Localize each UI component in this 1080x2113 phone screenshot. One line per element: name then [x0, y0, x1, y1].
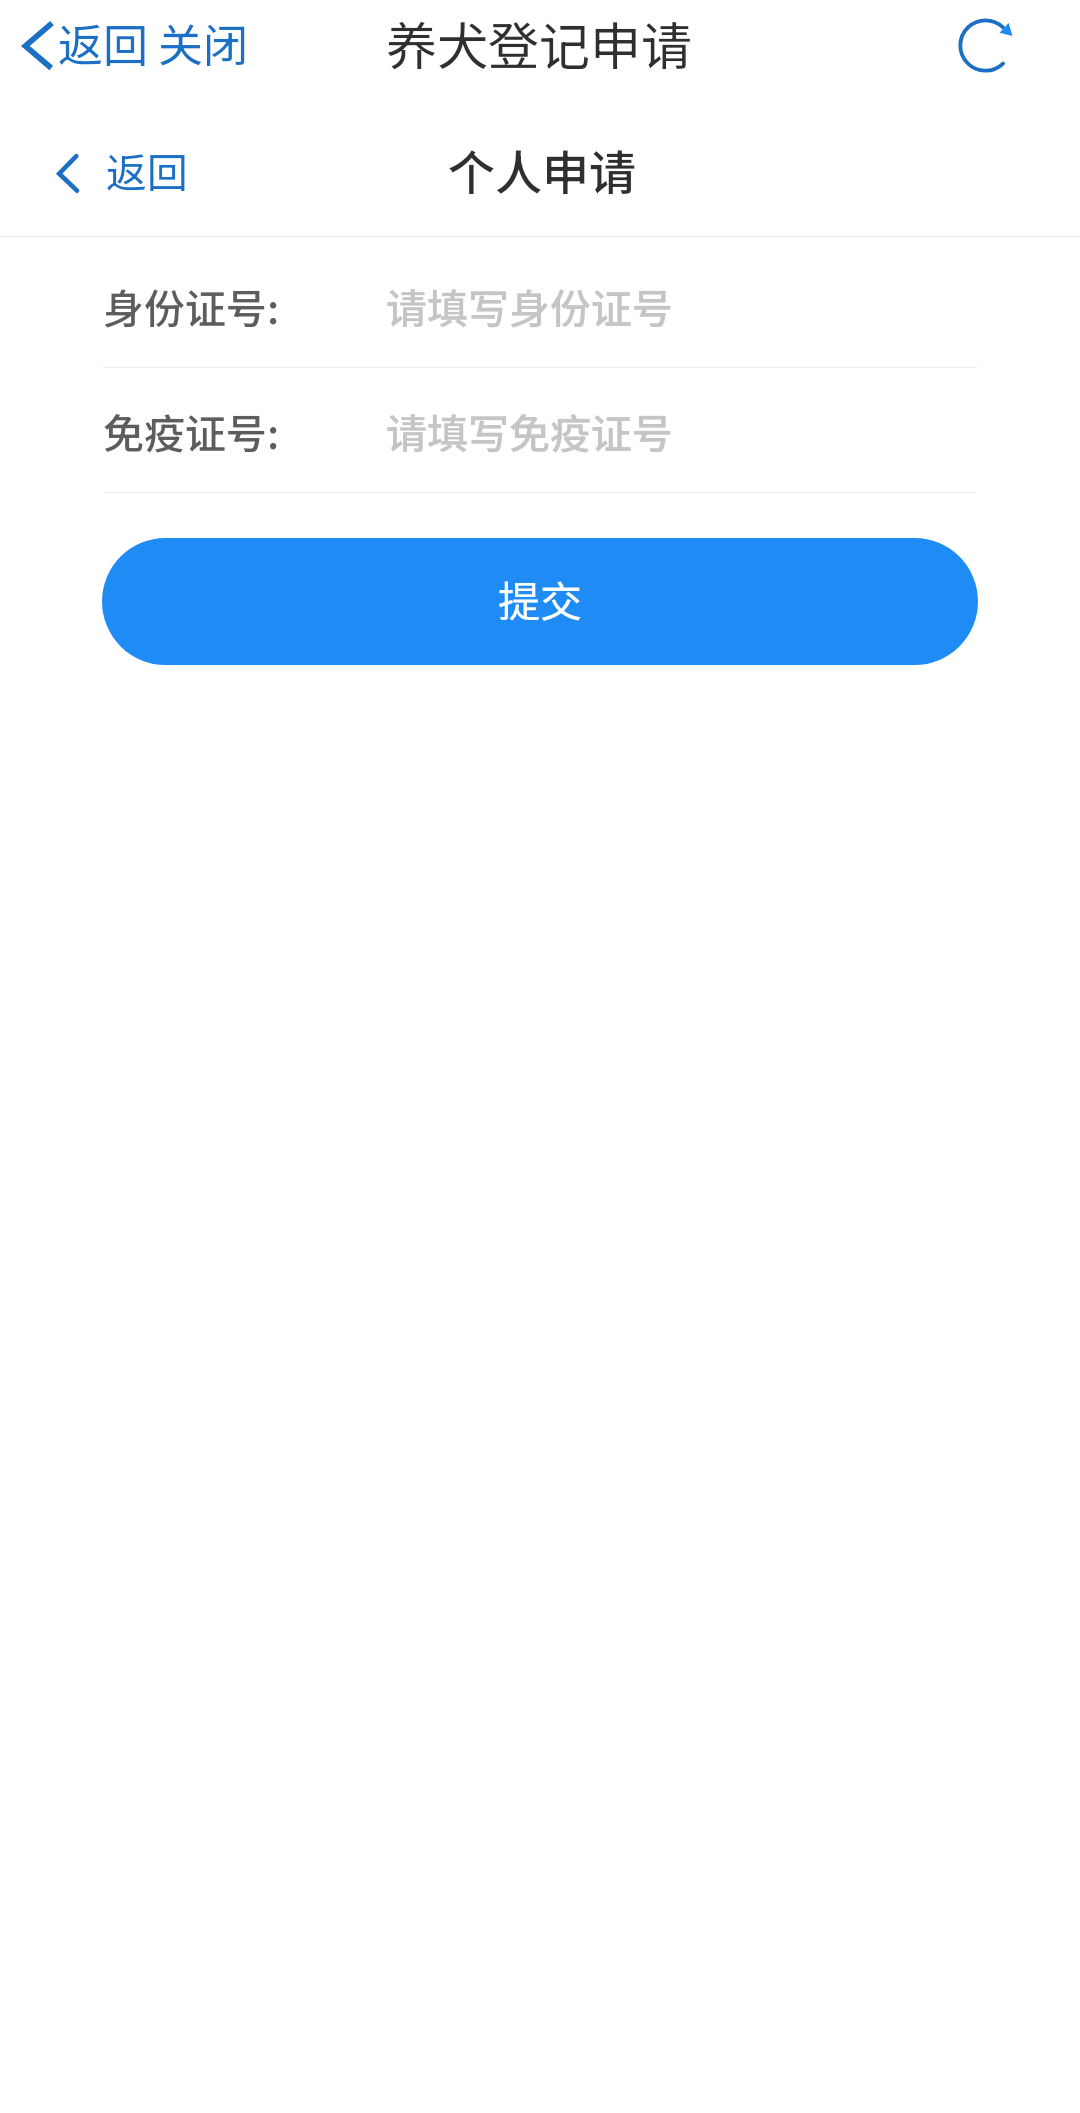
button[interactable]: 身份证号: [103, 243, 977, 367]
button[interactable]: 返回 [0, 0, 150, 92]
staticText: 关闭 [158, 10, 249, 75]
staticText: 请填写身份证号 [386, 276, 673, 335]
button[interactable]: 关闭 [152, 4, 256, 88]
staticText: 返回 [106, 140, 188, 199]
staticText: 返回 [58, 10, 149, 75]
button[interactable]: 免疫证号: [103, 368, 977, 492]
staticText: 请填写免疫证号 [386, 401, 673, 460]
staticText: 提交 [498, 568, 583, 629]
staticText: 个人申请 [448, 135, 636, 203]
staticText: 免疫证号: [103, 401, 280, 460]
button[interactable]: 刷新 Refresh [952, 12, 1020, 80]
staticText: 身份证号: [103, 276, 280, 335]
staticText: 养犬登记申请 [386, 6, 693, 80]
button[interactable]: 提交 [102, 538, 978, 665]
button[interactable]: 返回 [30, 120, 210, 220]
